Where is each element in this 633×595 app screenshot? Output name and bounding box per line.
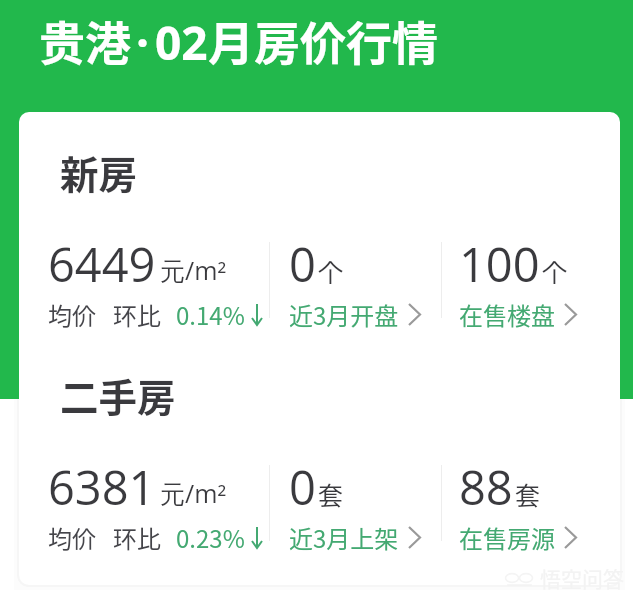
button[interactable]: 88 [459, 455, 609, 554]
staticText: 100 [459, 232, 540, 296]
staticText: 个 [318, 253, 344, 289]
staticText: 近3月上架 [289, 520, 399, 555]
staticText: 月房价行情 [208, 7, 438, 74]
button[interactable]: 0 [289, 232, 439, 331]
staticText: 贵港 [39, 7, 131, 74]
button[interactable]: 6449 [48, 232, 269, 331]
staticText: 0 [289, 455, 316, 519]
staticText: 02 [155, 11, 208, 74]
staticText: 环比 [113, 520, 161, 555]
staticText: · [136, 11, 150, 74]
staticText: 套 [515, 476, 541, 512]
staticText: 元/m² [160, 253, 227, 287]
staticText: 0 [289, 232, 316, 296]
staticText: 6381 [48, 455, 156, 519]
staticText: 二手房 [60, 367, 176, 423]
button[interactable]: 0 [289, 455, 439, 554]
staticText: 0.23% [176, 520, 245, 555]
staticText: 在售楼盘 [459, 297, 555, 332]
staticText: 88 [459, 455, 513, 519]
staticText: 环比 [113, 297, 161, 332]
staticText: 新房 [60, 144, 138, 200]
staticText: 均价 [48, 520, 96, 555]
staticText: 套 [318, 476, 344, 512]
staticText: 6449 [48, 232, 156, 296]
button[interactable]: 6381 [48, 455, 269, 554]
staticText: 元/m² [160, 476, 227, 510]
button[interactable]: 100 [459, 232, 609, 331]
staticText: 在售房源 [459, 520, 555, 555]
staticText: 均价 [48, 297, 96, 332]
staticText: 悟空问答 [540, 563, 624, 593]
staticText: 个 [542, 253, 568, 289]
staticText: 0.14% [176, 297, 245, 332]
staticText: 近3月开盘 [289, 297, 399, 332]
